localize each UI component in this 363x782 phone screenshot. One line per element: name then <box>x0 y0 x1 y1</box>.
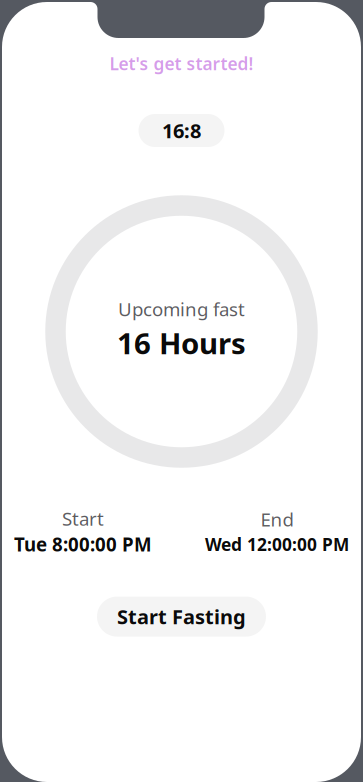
staticText: 16 Hours <box>117 323 246 362</box>
staticText: Upcoming fast <box>118 297 245 321</box>
staticText: 16:8 <box>162 117 201 144</box>
button[interactable]: 16:8 <box>138 114 224 147</box>
staticText: Tue 8:00:00 PM <box>14 532 152 557</box>
staticText: Let's get started! <box>109 52 253 75</box>
staticText: End <box>260 507 293 532</box>
button[interactable]: Start Fasting <box>97 597 266 637</box>
staticText: Wed 12:00:00 PM <box>205 533 349 556</box>
staticText: Start Fasting <box>117 603 246 630</box>
staticText: Start <box>62 506 104 531</box>
